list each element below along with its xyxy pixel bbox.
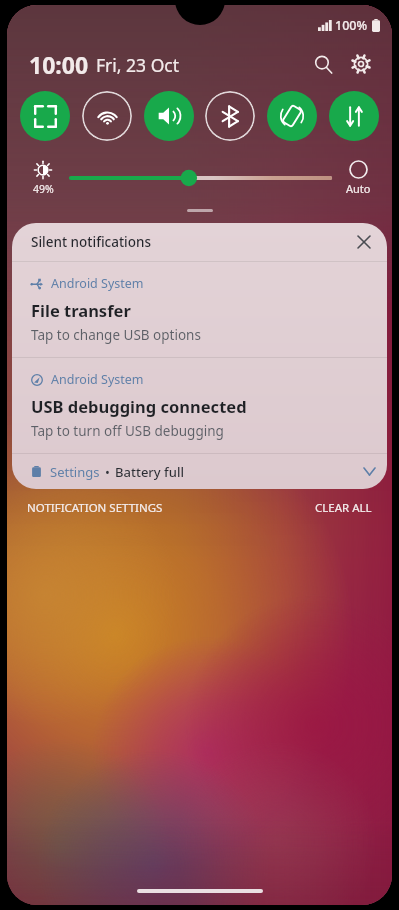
button[interactable]: Sound	[144, 91, 194, 141]
button[interactable]: CLEAR ALL	[315, 500, 372, 516]
staticText: 100%	[335, 17, 368, 34]
button[interactable]: Bluetooth	[205, 91, 255, 141]
staticText: File transfer	[31, 299, 131, 321]
staticText: Battery full	[115, 463, 184, 481]
staticText: 10:00	[29, 49, 89, 80]
staticText: 49%	[33, 182, 54, 196]
button[interactable]: Android System	[12, 262, 387, 357]
staticText: Fri, 23 Oct	[96, 53, 180, 77]
button[interactable]: Home	[137, 889, 263, 893]
button[interactable]: NOTIFICATION SETTINGS	[27, 500, 163, 516]
staticText: Tap to change USB options	[31, 326, 201, 344]
button[interactable]: Screen capture	[20, 91, 70, 141]
button[interactable]	[187, 209, 213, 212]
button[interactable]: Wi-Fi	[82, 91, 132, 141]
button[interactable]: Settings	[31, 454, 375, 489]
button[interactable]: Android System	[12, 358, 387, 453]
staticText: Tap to turn off USB debugging	[31, 422, 224, 440]
button[interactable]: Settings	[344, 47, 378, 81]
button[interactable]: Auto rotate	[267, 91, 317, 141]
button[interactable]: Dismiss silent notifications	[349, 227, 379, 257]
staticText: Android System	[51, 371, 144, 388]
button[interactable]: Mobile data	[329, 91, 379, 141]
staticText: Android System	[51, 275, 144, 292]
button[interactable]	[71, 163, 330, 193]
staticText: NOTIFICATION SETTINGS	[27, 500, 163, 516]
staticText: Settings	[50, 463, 100, 481]
staticText: CLEAR ALL	[315, 500, 372, 516]
staticText: Auto	[346, 181, 371, 196]
staticText: USB debugging connected	[31, 395, 247, 417]
staticText: •	[105, 463, 110, 481]
staticText: Silent notifications	[31, 233, 152, 251]
button[interactable]: Auto brightness	[338, 160, 378, 196]
button[interactable]: Search	[306, 47, 340, 81]
